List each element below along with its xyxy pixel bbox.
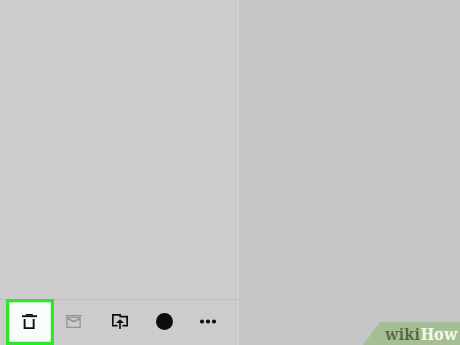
- staticText: wiki: [385, 323, 421, 345]
- button[interactable]: Archive: [51, 299, 95, 344]
- button[interactable]: Move to: [98, 299, 142, 344]
- button[interactable]: More options: [186, 299, 230, 344]
- button[interactable]: Mark as unread: [142, 299, 186, 344]
- staticText: How: [421, 323, 458, 345]
- button[interactable]: Delete: [6, 299, 53, 345]
